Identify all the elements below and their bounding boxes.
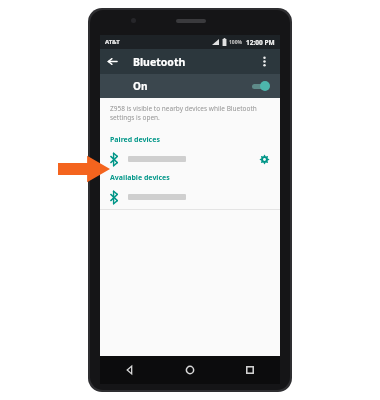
staticText: Bluetooth — [133, 55, 186, 69]
button[interactable]: Recents — [220, 356, 280, 384]
button[interactable]: Back — [100, 356, 160, 384]
staticText: Available devices — [110, 173, 170, 183]
staticText: 12:00 PM — [246, 38, 275, 47]
staticText: On — [133, 79, 148, 93]
button[interactable]: On — [100, 74, 280, 98]
button[interactable]: Home — [160, 356, 220, 384]
button[interactable]: More options — [252, 49, 277, 74]
staticText: 100% — [229, 39, 243, 46]
staticText: Paired devices — [110, 135, 160, 145]
button[interactable]: Device settings — [100, 147, 280, 171]
button[interactable] — [100, 185, 280, 209]
staticText: AT&T — [105, 38, 120, 46]
button[interactable]: Device settings — [256, 151, 272, 167]
staticText: Z958 is visible to nearby devices while … — [110, 104, 257, 122]
button[interactable]: Navigate up — [100, 49, 125, 74]
